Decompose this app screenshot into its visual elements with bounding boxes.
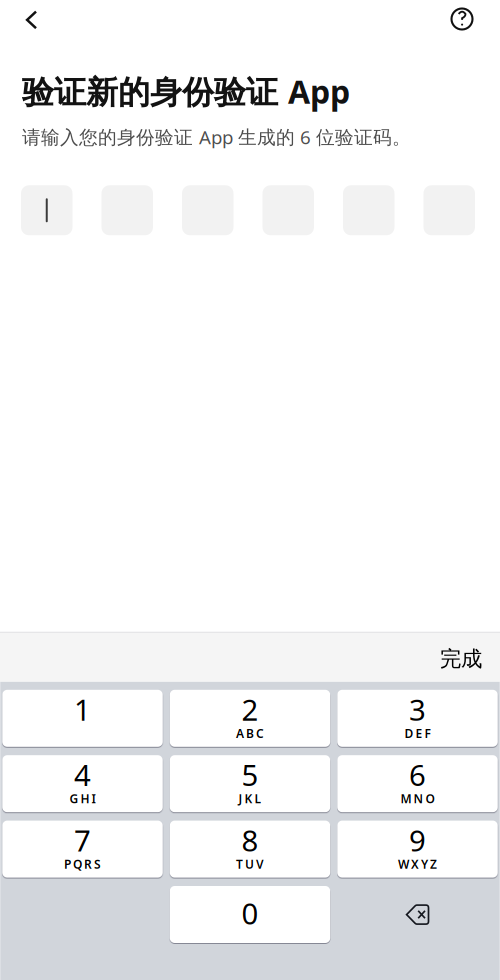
staticText: D E F [404, 725, 430, 741]
button[interactable]: Delete [337, 886, 498, 943]
button[interactable]: 5 [170, 755, 330, 812]
button[interactable]: 3 [337, 690, 498, 747]
staticText: 7 [74, 821, 91, 860]
staticText: 完成 [440, 646, 482, 672]
staticText: 8 [241, 821, 258, 860]
staticText: 3 [409, 690, 426, 729]
staticText: 0 [241, 893, 258, 932]
button[interactable]: 8 [170, 821, 330, 878]
button[interactable]: Back [8, 0, 52, 38]
staticText: 2 [241, 690, 258, 729]
staticText: T U V [236, 856, 264, 872]
button[interactable]: 0 [170, 886, 330, 943]
staticText: 4 [74, 755, 91, 794]
staticText: 9 [409, 821, 426, 860]
staticText: W X Y Z [398, 856, 437, 872]
staticText: 5 [241, 755, 258, 794]
button[interactable]: 4 [2, 755, 163, 812]
staticText: J K L [238, 791, 261, 807]
button[interactable]: Help [440, 0, 484, 38]
staticText: 请输入您的身份验证 App 生成的 6 位验证码。 [22, 124, 411, 149]
staticText: M N O [400, 791, 434, 807]
staticText: G H I [69, 791, 95, 807]
button[interactable]: 2 [170, 690, 330, 747]
staticText: 验证新的身份验证 App [22, 70, 350, 112]
staticText: A B C [236, 725, 264, 741]
button[interactable]: 7 [2, 821, 163, 878]
staticText: 1 [74, 690, 91, 729]
button[interactable]: 6 [337, 755, 498, 812]
button[interactable]: 9 [337, 821, 498, 878]
staticText: 6 [409, 755, 426, 794]
button[interactable]: 1 [2, 690, 163, 747]
button[interactable]: 完成 [420, 629, 500, 685]
staticText: P Q R S [64, 856, 101, 872]
